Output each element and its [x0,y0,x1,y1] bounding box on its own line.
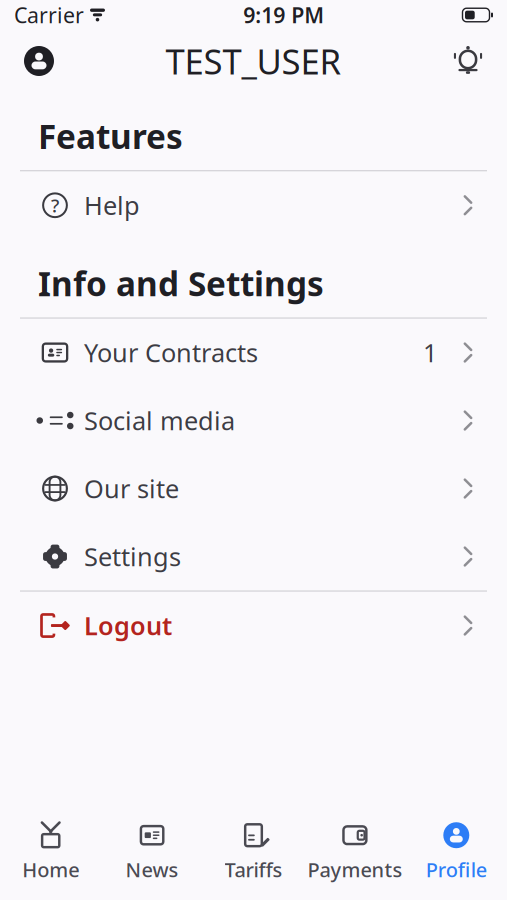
button[interactable]: Social media [0,386,507,454]
button[interactable]: Home [0,818,101,886]
staticText: Carrier [14,1,84,29]
staticText: News [126,856,179,883]
staticText: TEST_USER [165,38,341,84]
button[interactable]: Payments [304,818,406,886]
staticText: Your Contracts [84,336,258,369]
staticText: Profile [426,856,487,883]
staticText: Our site [84,472,179,505]
staticText: Info and Settings [38,261,324,306]
button[interactable]: Notifications [441,34,495,88]
staticText: Payments [307,856,402,883]
button[interactable]: Our site [0,454,507,522]
staticText: 1 [423,336,437,369]
button[interactable]: Tariffs [203,818,304,886]
staticText: Tariffs [224,856,282,883]
button[interactable]: Your Contracts [0,318,507,386]
staticText: Social media [84,404,235,437]
button[interactable]: Profile [406,818,507,886]
button[interactable]: Logout [0,591,507,659]
staticText: Settings [84,540,181,573]
button[interactable]: News [101,818,203,886]
button[interactable]: ? [0,171,507,239]
staticText: Help [84,188,140,222]
staticText: ? [51,193,59,218]
staticText: 9:19 PM [243,1,324,29]
button[interactable]: Account [12,34,66,88]
staticText: Home [22,856,79,883]
button[interactable]: Settings [0,522,507,590]
staticText: Logout [84,609,172,642]
staticText: Features [38,114,183,158]
